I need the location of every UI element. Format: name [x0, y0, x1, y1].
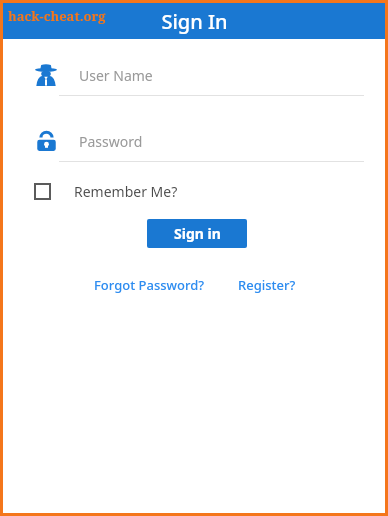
- staticText: Sign In: [161, 8, 228, 35]
- staticText: Password: [79, 132, 143, 151]
- staticText: Forgot Password?: [94, 276, 205, 294]
- staticText: Register?: [238, 276, 296, 294]
- staticText: User Name: [79, 66, 153, 85]
- other: User name: [34, 63, 58, 87]
- button[interactable]: Password: [34, 129, 364, 153]
- button[interactable]: Remember Me?: [34, 182, 178, 201]
- other: Password: [34, 129, 58, 153]
- staticText: Remember Me?: [74, 182, 178, 201]
- staticText: Sign in: [174, 224, 221, 243]
- button[interactable]: Sign in: [147, 219, 247, 248]
- button[interactable]: User name: [34, 63, 364, 87]
- button[interactable]: Register?: [236, 274, 298, 296]
- staticText: hack-cheat.org: [8, 7, 106, 25]
- button[interactable]: Forgot Password?: [92, 274, 207, 296]
